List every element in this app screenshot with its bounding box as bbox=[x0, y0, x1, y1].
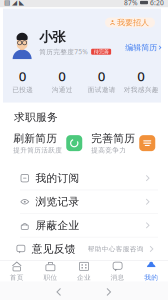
button[interactable]: 0 bbox=[42, 67, 82, 94]
staticText: 浏览记录 bbox=[35, 195, 79, 208]
staticText: 刷新简历 bbox=[13, 132, 57, 145]
button[interactable]: 企业 bbox=[67, 262, 101, 280]
button[interactable]: 我的 bbox=[134, 262, 168, 280]
staticText: 首页 bbox=[10, 273, 24, 282]
staticText: 消息 bbox=[111, 273, 125, 282]
staticText: 我要招人 bbox=[117, 18, 149, 27]
button[interactable]: 职位 bbox=[34, 262, 67, 280]
staticText: 企业 bbox=[77, 273, 91, 282]
button[interactable]: 意见反馈 bbox=[12, 237, 158, 260]
button[interactable]: 0 bbox=[121, 67, 161, 94]
staticText: 待完善 bbox=[94, 48, 109, 55]
button[interactable]: 首页 bbox=[0, 262, 34, 280]
button[interactable]: 消息 bbox=[101, 262, 134, 280]
button[interactable]: 屏蔽企业 bbox=[12, 214, 158, 237]
button[interactable]: 刷新简历 bbox=[12, 130, 82, 157]
button[interactable]: 0 bbox=[82, 67, 121, 94]
staticText: 面试邀请 bbox=[88, 86, 116, 94]
staticText: 编辑简历 bbox=[125, 43, 157, 52]
staticText: 简历完整度75% bbox=[39, 47, 88, 56]
staticText: 职位 bbox=[43, 273, 57, 282]
staticText: 87% bbox=[124, 0, 138, 7]
staticText: 完善简历 bbox=[91, 132, 135, 145]
staticText: 沟通过 bbox=[52, 86, 73, 94]
button[interactable]: 完善简历 bbox=[87, 130, 158, 157]
staticText: 0 bbox=[137, 67, 145, 85]
staticText: 我的 bbox=[144, 273, 158, 282]
staticText: 求职服务 bbox=[14, 110, 58, 124]
button[interactable]: 编辑简历 bbox=[125, 33, 162, 52]
staticText: 屏蔽企业 bbox=[35, 219, 79, 232]
button[interactable]: 0 bbox=[3, 67, 42, 94]
staticText: 帮助中心客服咨询 bbox=[88, 245, 144, 253]
button[interactable]: 我要招人 bbox=[105, 17, 155, 27]
staticText: 我的订阅 bbox=[35, 172, 79, 185]
staticText: 对我感兴趣 bbox=[124, 86, 159, 94]
staticText: 已投递 bbox=[12, 86, 33, 94]
staticText: 0 bbox=[58, 67, 66, 85]
staticText: 0 bbox=[19, 67, 27, 85]
staticText: 提升简历活跃度 bbox=[13, 146, 62, 154]
button[interactable]: 我的订阅 bbox=[12, 167, 158, 190]
staticText: ▤ ◢ ◣ bbox=[4, 0, 24, 6]
staticText: 提高竞争力 bbox=[91, 146, 126, 154]
button[interactable]: Forward bbox=[97, 283, 121, 300]
staticText: 意见反馈 bbox=[32, 242, 76, 255]
button[interactable]: Back bbox=[47, 283, 71, 300]
button[interactable]: 浏览记录 bbox=[12, 190, 158, 213]
staticText: 0 bbox=[98, 67, 106, 85]
staticText: 小张 bbox=[39, 29, 65, 45]
staticText: 6:20 bbox=[150, 0, 164, 7]
